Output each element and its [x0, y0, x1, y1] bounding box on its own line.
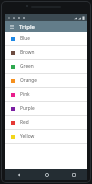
staticText: Blue	[20, 35, 31, 42]
button[interactable]: Red	[5, 116, 87, 129]
staticText: Triple	[19, 23, 36, 31]
staticText: Pink	[20, 91, 30, 98]
button[interactable]: Open navigation drawer	[8, 23, 15, 30]
staticText: Brown	[20, 49, 35, 56]
button[interactable]: Brown	[5, 46, 87, 59]
staticText: Green	[20, 63, 34, 70]
button[interactable]: Recent apps	[60, 169, 87, 180]
staticText: Purple	[20, 105, 35, 112]
staticText: Yellow	[20, 133, 35, 140]
button[interactable]: Yellow	[5, 130, 87, 143]
button[interactable]: Orange	[5, 74, 87, 87]
button[interactable]: Pink	[5, 88, 87, 101]
button[interactable]: Green	[5, 60, 87, 73]
staticText: Red	[20, 119, 29, 126]
button[interactable]: Purple	[5, 102, 87, 115]
button[interactable]: Home	[33, 169, 60, 180]
button[interactable]: Back	[5, 169, 33, 180]
staticText: Orange	[20, 77, 37, 84]
button[interactable]: Blue	[5, 32, 87, 45]
